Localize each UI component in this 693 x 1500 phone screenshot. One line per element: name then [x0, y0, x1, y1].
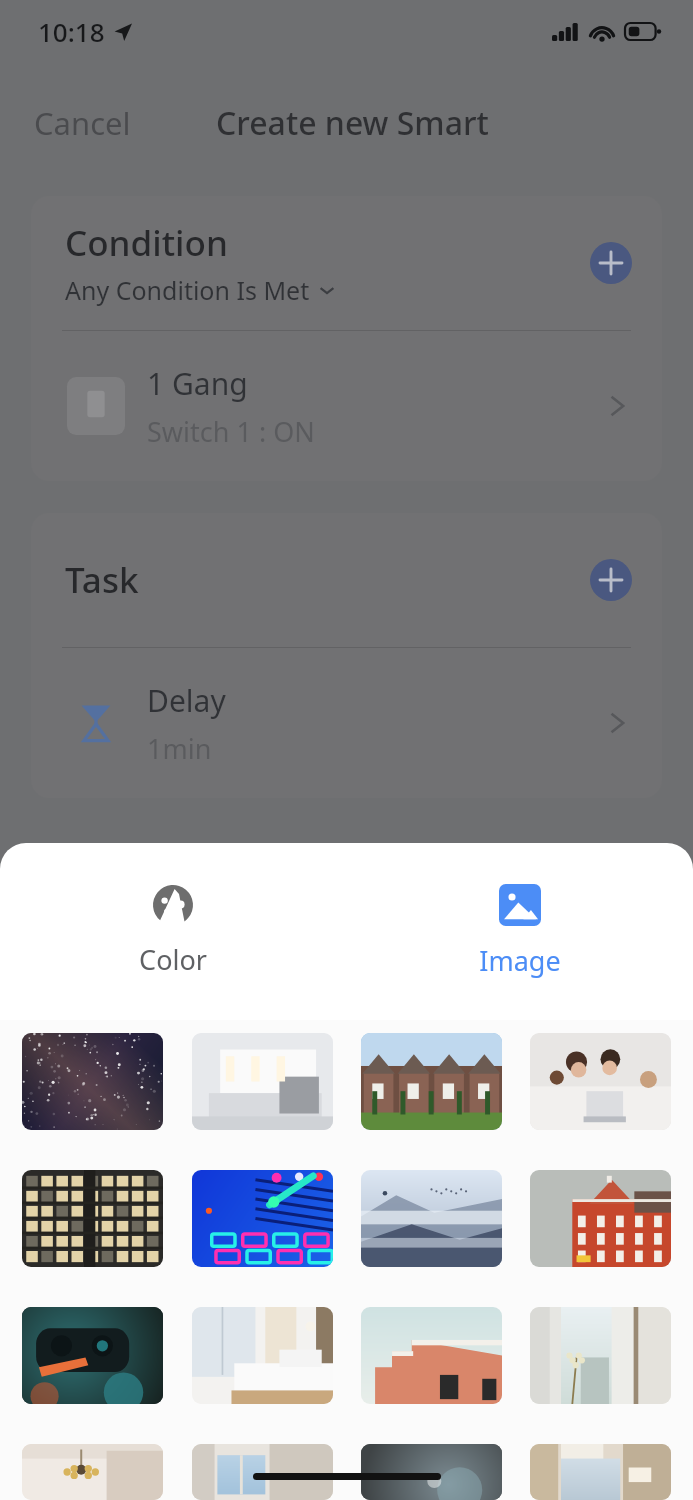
staticText: 1 Gang — [147, 363, 248, 404]
button[interactable]: Wallpaper 13 — [22, 1444, 163, 1500]
button[interactable]: Color — [0, 843, 346, 1020]
button[interactable]: Add Condition — [590, 242, 632, 284]
button[interactable]: Wallpaper 3 — [361, 1033, 502, 1130]
staticText: 10:18 — [38, 14, 105, 49]
staticText: Condition — [65, 219, 228, 267]
button[interactable]: Wallpaper 4 — [530, 1033, 671, 1130]
button[interactable]: Wallpaper 16 — [530, 1444, 671, 1500]
button[interactable]: Wallpaper 12 — [530, 1307, 671, 1404]
staticText: Any Condition Is Met — [65, 273, 310, 307]
staticText: Image — [479, 942, 561, 979]
staticText: 1min — [147, 730, 212, 767]
button[interactable]: Wallpaper 14 — [192, 1444, 333, 1500]
staticText: Cancel — [34, 102, 131, 144]
button[interactable]: Any Condition Is Met — [65, 273, 335, 307]
button[interactable]: Wallpaper 8 — [530, 1170, 671, 1267]
button[interactable]: Wallpaper 2 — [192, 1033, 333, 1130]
staticText: Task — [65, 556, 139, 604]
staticText: Create new Smart — [216, 101, 489, 145]
button[interactable]: Wallpaper 6 — [192, 1170, 333, 1267]
button[interactable]: Delay — [31, 648, 662, 798]
button[interactable]: Wallpaper 10 — [192, 1307, 333, 1404]
button[interactable]: Wallpaper 5 — [22, 1170, 163, 1267]
button[interactable]: Wallpaper 9 — [22, 1307, 163, 1404]
button[interactable]: Wallpaper 15 — [361, 1444, 502, 1500]
staticText: Color — [139, 941, 207, 978]
button[interactable]: 1 Gang — [31, 331, 662, 481]
staticText: Switch 1 : ON — [147, 413, 315, 450]
button[interactable]: Wallpaper 7 — [361, 1170, 502, 1267]
button[interactable]: Add Task — [590, 559, 632, 601]
staticText: Delay — [147, 680, 226, 721]
button[interactable]: Wallpaper 1 — [22, 1033, 163, 1130]
button[interactable]: Wallpaper 11 — [361, 1307, 502, 1404]
button[interactable]: Image — [346, 843, 693, 1020]
button[interactable]: Cancel — [0, 94, 165, 152]
